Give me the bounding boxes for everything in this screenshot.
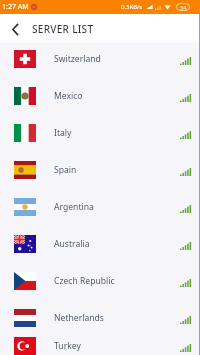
staticText: Switzerland xyxy=(54,53,101,65)
staticText: Turkey xyxy=(54,340,81,352)
button[interactable]: Argentina xyxy=(0,188,200,225)
button[interactable]: Turkey xyxy=(0,336,200,355)
staticText: Czech Republic xyxy=(54,275,115,287)
staticText: SERVER LIST xyxy=(32,22,94,36)
button[interactable]: Spain xyxy=(0,151,200,188)
staticText: Spain xyxy=(54,164,77,176)
button[interactable]: Mexico xyxy=(0,77,200,114)
staticText: Australia xyxy=(54,238,90,250)
button[interactable]: Back xyxy=(0,16,31,42)
staticText: Italy xyxy=(54,127,72,139)
staticText: 1:27 AM xyxy=(2,2,29,12)
staticText: Argentina xyxy=(54,201,94,213)
staticText: 34 xyxy=(180,4,187,11)
button[interactable]: Australia xyxy=(0,225,200,262)
staticText: Netherlands xyxy=(54,312,104,324)
button[interactable]: Czech Republic xyxy=(0,262,200,299)
button[interactable]: Switzerland xyxy=(0,40,200,77)
staticText: 0.3KB/s xyxy=(121,3,143,11)
button[interactable]: Italy xyxy=(0,114,200,151)
staticText: Mexico xyxy=(54,90,83,102)
button[interactable]: Netherlands xyxy=(0,299,200,336)
